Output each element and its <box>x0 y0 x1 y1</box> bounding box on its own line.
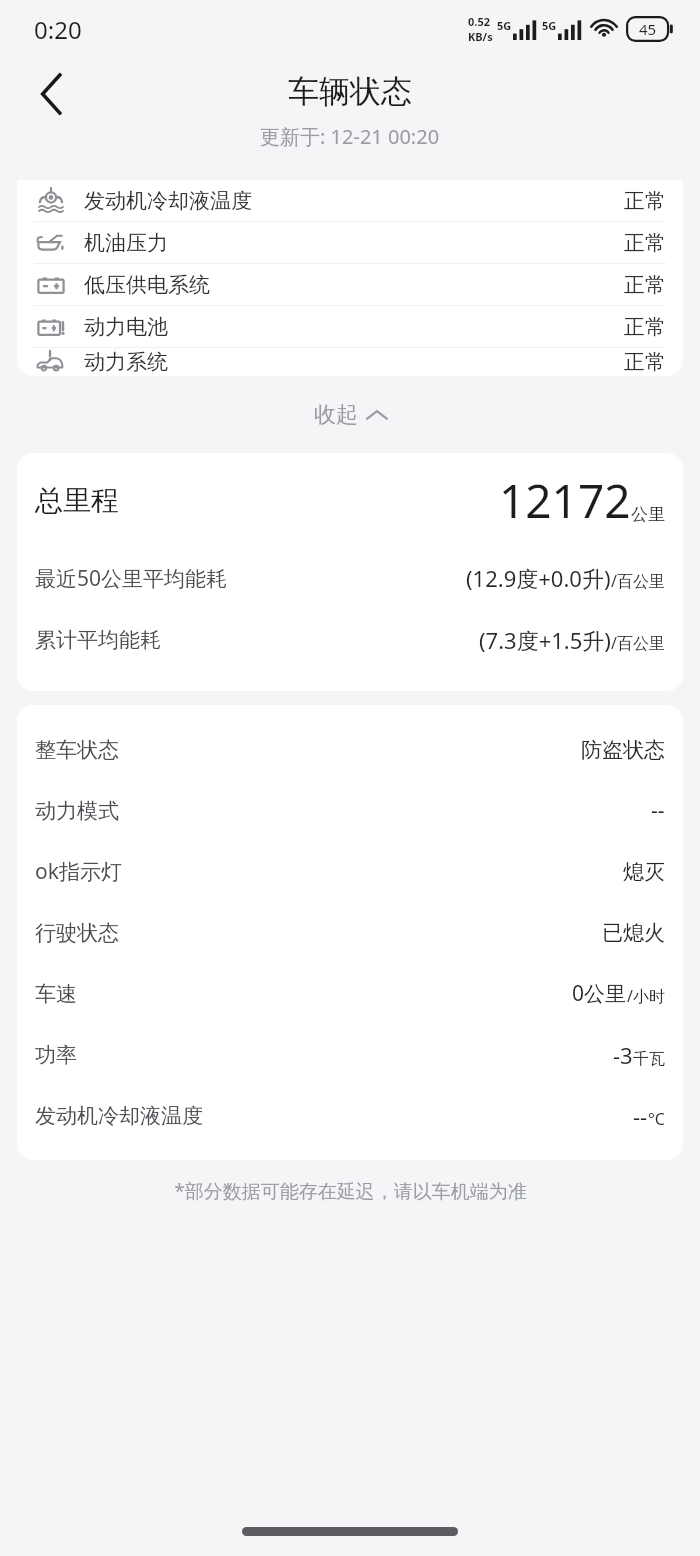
staticText: KB/s <box>468 29 493 44</box>
staticText: 正常 <box>624 349 666 375</box>
button[interactable]: 发动机冷却液温度 <box>35 1085 665 1146</box>
staticText: 防盗状态 <box>581 737 665 763</box>
staticText: 动力电池 <box>84 314 168 340</box>
staticText: 更新于: 12-21 00:20 <box>260 123 440 150</box>
staticText: 0公里 <box>572 979 627 1008</box>
staticText: 低压供电系统 <box>84 272 210 298</box>
staticText: 收起 <box>314 401 358 429</box>
staticText: 公里 <box>631 504 665 525</box>
staticText: 正常 <box>624 230 666 256</box>
staticText: /小时 <box>627 985 665 1007</box>
button[interactable]: 行驶状态 <box>35 902 665 963</box>
button[interactable]: ok指示灯 <box>35 841 665 902</box>
button[interactable]: 低压供电系统 <box>17 264 683 305</box>
staticText: 5G <box>497 18 512 33</box>
button[interactable]: 动力电池 <box>17 306 683 347</box>
staticText: 总里程 <box>35 483 119 518</box>
button[interactable]: 机油压力 <box>17 222 683 263</box>
button[interactable]: 收起 <box>0 376 700 453</box>
staticText: 正常 <box>624 314 666 340</box>
staticText: 机油压力 <box>84 230 168 256</box>
staticText: 车辆状态 <box>288 72 412 111</box>
button[interactable]: 返回 <box>20 62 84 126</box>
staticText: 最近50公里平均能耗 <box>35 564 228 593</box>
staticText: 车速 <box>35 981 77 1007</box>
staticText: *部分数据可能存在延迟，请以车机端为准 <box>174 1178 527 1204</box>
staticText: 发动机冷却液温度 <box>35 1103 203 1129</box>
staticText: -- <box>651 796 665 825</box>
staticText: 动力模式 <box>35 798 119 824</box>
staticText: -- <box>633 1101 648 1131</box>
staticText: 累计平均能耗 <box>35 627 161 653</box>
staticText: 功率 <box>35 1042 77 1068</box>
staticText: 12172 <box>499 469 631 532</box>
staticText: (7.3度+1.5升) <box>479 625 611 655</box>
staticText: 发动机冷却液温度 <box>84 188 252 214</box>
staticText: °C <box>648 1108 665 1130</box>
staticText: (12.9度+0.0升) <box>466 563 611 593</box>
staticText: /百公里 <box>611 632 665 654</box>
button[interactable]: 车速 <box>35 963 665 1024</box>
staticText: 0:20 <box>34 13 82 46</box>
staticText: 正常 <box>624 188 666 214</box>
button[interactable]: 发动机冷却液温度 <box>17 180 683 221</box>
staticText: ok指示灯 <box>35 857 122 886</box>
staticText: 45 <box>639 19 657 39</box>
staticText: 千瓦 <box>633 1049 665 1069</box>
staticText: 正常 <box>624 272 666 298</box>
staticText: 0.52 <box>468 14 490 29</box>
staticText: 5G <box>542 18 557 33</box>
button[interactable]: 动力系统 <box>17 348 683 376</box>
staticText: 熄灭 <box>623 859 665 885</box>
staticText: 行驶状态 <box>35 920 119 946</box>
staticText: -3 <box>613 1040 633 1070</box>
button[interactable]: 整车状态 <box>35 719 665 780</box>
button[interactable]: 功率 <box>35 1024 665 1085</box>
staticText: 动力系统 <box>84 349 168 375</box>
staticText: 整车状态 <box>35 737 119 763</box>
staticText: 已熄火 <box>602 920 665 946</box>
staticText: /百公里 <box>611 570 665 592</box>
button[interactable]: 动力模式 <box>35 780 665 841</box>
